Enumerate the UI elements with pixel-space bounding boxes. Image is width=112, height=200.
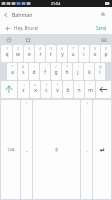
- staticText: ,: [26, 147, 28, 154]
- button[interactable]: ": [85, 81, 95, 98]
- button[interactable]: _: [40, 63, 50, 80]
- staticText: t: [50, 51, 52, 58]
- staticText: !: [26, 102, 27, 106]
- staticText: ): [57, 83, 58, 87]
- button[interactable]: 7: [68, 45, 78, 62]
- staticText: #: [22, 65, 24, 69]
- staticText: k: [88, 69, 91, 76]
- staticText: ": [89, 83, 91, 87]
- staticText: h: [65, 69, 69, 76]
- button[interactable]: Enter: [93, 100, 111, 199]
- button[interactable]: 5: [46, 45, 56, 62]
- button[interactable]: Theme: [23, 35, 32, 44]
- button[interactable]: /: [51, 63, 61, 80]
- button[interactable]: x: [30, 81, 40, 98]
- staticText: m: [88, 87, 93, 94]
- staticText: 9: [94, 47, 96, 51]
- staticText: 2: [17, 47, 19, 51]
- staticText: l: [99, 69, 101, 76]
- staticText: 4: [39, 47, 41, 51]
- button[interactable]: !: [73, 63, 83, 80]
- staticText: -: [34, 65, 35, 69]
- staticText: /: [55, 65, 57, 69]
- staticText: 7: [72, 47, 74, 51]
- button[interactable]: Bahman: [0, 8, 37, 21]
- button[interactable]: ;: [74, 81, 84, 98]
- staticText: :: [68, 83, 69, 87]
- staticText: q: [5, 51, 9, 58]
- staticText: g: [54, 69, 58, 76]
- button[interactable]: 6: [57, 45, 67, 62]
- staticText: ': [89, 65, 90, 69]
- staticText: 21:04: [51, 1, 61, 6]
- staticText: v: [56, 87, 59, 94]
- button[interactable]: 8: [79, 45, 89, 62]
- staticText: _: [44, 65, 46, 69]
- staticText: i: [83, 51, 85, 58]
- button[interactable]: Stickers: [4, 35, 13, 44]
- staticText: f: [44, 69, 46, 76]
- button[interactable]: Shift: [1, 81, 17, 98]
- button[interactable]: 12#: [1, 100, 20, 199]
- staticText: r: [39, 51, 42, 58]
- staticText: p: [104, 51, 108, 58]
- staticText: !: [78, 65, 79, 69]
- button[interactable]: Send: [94, 23, 109, 33]
- staticText: .: [86, 147, 88, 154]
- staticText: @: [99, 65, 102, 69]
- button[interactable]: Backspace: [96, 81, 111, 98]
- staticText: *: [11, 65, 13, 69]
- staticText: ;: [79, 83, 80, 87]
- button[interactable]: 2: [13, 45, 23, 62]
- staticText: x: [34, 87, 37, 94]
- button[interactable]: ?: [62, 63, 72, 80]
- button[interactable]: 3: [24, 45, 34, 62]
- button[interactable]: +: [18, 81, 29, 98]
- button[interactable]: @: [95, 63, 105, 80]
- staticText: o: [93, 51, 97, 58]
- button[interactable]: 1: [1, 45, 12, 62]
- staticText: s: [22, 69, 25, 76]
- staticText: 1: [6, 47, 8, 51]
- staticText: j: [77, 69, 79, 76]
- button[interactable]: ): [52, 81, 62, 98]
- staticText: 6: [61, 47, 63, 51]
- staticText: x: [34, 83, 36, 87]
- staticText: ?: [86, 102, 88, 106]
- button[interactable]: Keyboard settings: [99, 35, 108, 44]
- button[interactable]: *: [7, 63, 17, 80]
- staticText: +: [23, 83, 25, 87]
- staticText: Send: [96, 25, 107, 31]
- staticText: Bahman: [12, 11, 33, 18]
- staticText: w: [16, 51, 20, 58]
- staticText: 5: [50, 47, 52, 51]
- button[interactable]: Attach: [3, 24, 11, 32]
- button[interactable]: Hey, Bruce!: [14, 25, 94, 31]
- button[interactable]: 9: [90, 45, 100, 62]
- staticText: a: [11, 69, 14, 76]
- button[interactable]: :: [63, 81, 73, 98]
- button[interactable]: Contact info: [94, 7, 112, 22]
- button[interactable]: (: [41, 81, 51, 98]
- staticText: u: [71, 51, 75, 58]
- button[interactable]: ': [84, 63, 94, 80]
- staticText: ?: [66, 65, 68, 69]
- staticText: 3: [28, 47, 30, 51]
- staticText: z: [22, 87, 25, 94]
- staticText: n: [77, 87, 81, 94]
- staticText: d: [32, 69, 36, 76]
- button[interactable]: -: [29, 63, 39, 80]
- staticText: y: [61, 51, 64, 58]
- button[interactable]: 0: [101, 45, 111, 62]
- staticText: (: [46, 83, 47, 87]
- staticText: Hey, Bruce!: [14, 25, 39, 31]
- button[interactable]: #: [18, 63, 28, 80]
- button[interactable]: 4: [35, 45, 45, 62]
- staticText: c: [45, 87, 48, 94]
- staticText: 0: [105, 47, 107, 51]
- staticText: e: [28, 51, 31, 58]
- staticText: 8: [83, 47, 85, 51]
